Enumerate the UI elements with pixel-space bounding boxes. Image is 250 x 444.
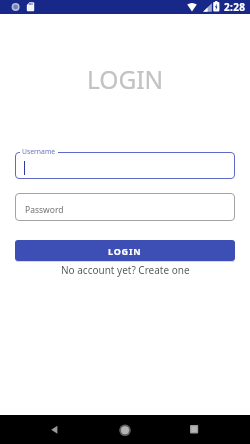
button[interactable] bbox=[181, 418, 205, 442]
button[interactable] bbox=[15, 152, 235, 179]
staticText: Username bbox=[22, 147, 56, 156]
staticText: LOGIN bbox=[108, 245, 142, 257]
button[interactable] bbox=[41, 418, 65, 442]
button[interactable]: No account yet? Create one bbox=[61, 263, 190, 277]
button[interactable]: LOGIN bbox=[15, 240, 235, 261]
staticText: Password bbox=[25, 204, 64, 216]
staticText: LOGIN bbox=[87, 63, 164, 96]
button[interactable]: Password bbox=[15, 193, 235, 221]
staticText: 2:28 bbox=[224, 0, 246, 14]
button[interactable] bbox=[113, 418, 137, 442]
